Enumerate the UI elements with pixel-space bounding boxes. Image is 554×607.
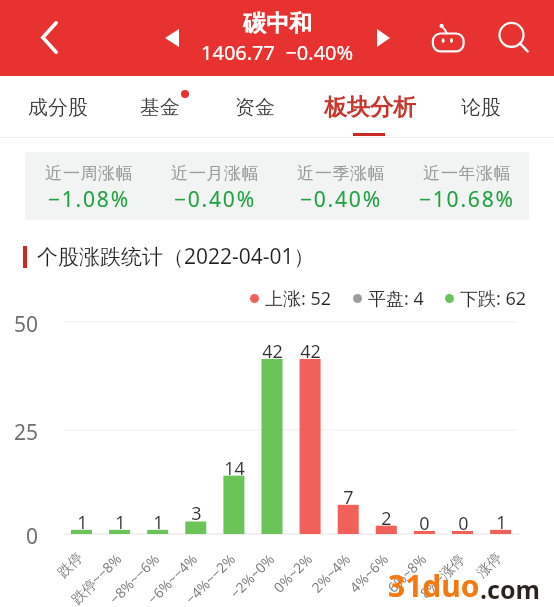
button[interactable]: Assistant bbox=[425, 14, 473, 62]
staticText: −4%~−2% bbox=[181, 549, 240, 607]
staticText: 近一月涨幅 bbox=[171, 163, 259, 184]
staticText: −2%~0% bbox=[225, 549, 278, 602]
staticText: 2%~4% bbox=[307, 549, 355, 596]
button[interactable]: 论股 bbox=[429, 77, 533, 137]
staticText: 个股涨跌统计（2022-04-01） bbox=[37, 242, 315, 271]
staticText: .com bbox=[480, 572, 540, 606]
staticText: 6%~8% bbox=[383, 549, 431, 596]
staticText: 0 bbox=[458, 511, 469, 536]
staticText: 1 bbox=[115, 510, 126, 535]
button[interactable]: 近一周涨幅 bbox=[25, 152, 529, 220]
staticText: −1.08% bbox=[48, 185, 130, 214]
staticText: 0%~2% bbox=[269, 549, 317, 596]
staticText: −0.40% bbox=[174, 185, 256, 214]
staticText: 涨停 bbox=[473, 549, 506, 582]
staticText: 1 bbox=[153, 510, 164, 535]
staticText: 0 bbox=[26, 522, 39, 551]
staticText: −6%~−4% bbox=[143, 549, 202, 607]
staticText: 2 bbox=[381, 506, 392, 531]
staticText: 基金 bbox=[140, 95, 180, 120]
button[interactable]: 资金 bbox=[203, 77, 307, 137]
staticText: 0 bbox=[419, 511, 430, 536]
staticText: 3 bbox=[191, 501, 202, 526]
staticText: 平盘: 4 bbox=[368, 286, 424, 311]
button[interactable]: Search bbox=[490, 14, 538, 62]
staticText: 上涨: 52 bbox=[265, 286, 332, 311]
staticText: 50 bbox=[14, 310, 39, 339]
staticText: 跌停~−8% bbox=[67, 549, 126, 607]
staticText: 碳中和 bbox=[243, 9, 312, 38]
button[interactable]: Back bbox=[25, 13, 73, 61]
staticText: 板块分析 bbox=[324, 93, 416, 122]
button[interactable]: Previous sector bbox=[153, 19, 190, 56]
staticText: 42 bbox=[262, 339, 283, 364]
button[interactable]: 基金 bbox=[108, 77, 212, 137]
button[interactable]: 板块分析 bbox=[318, 77, 422, 137]
staticText: 14 bbox=[224, 456, 245, 481]
staticText: 跌停 bbox=[54, 549, 87, 582]
staticText: −8%~−6% bbox=[105, 549, 164, 607]
button[interactable]: 成分股 bbox=[6, 77, 110, 137]
button[interactable]: Next sector bbox=[365, 19, 402, 56]
staticText: 近一季涨幅 bbox=[297, 163, 385, 184]
staticText: 近一年涨幅 bbox=[423, 163, 511, 184]
staticText: 31duo bbox=[388, 565, 480, 606]
staticText: 25 bbox=[14, 418, 39, 447]
staticText: 下跌: 62 bbox=[460, 286, 527, 311]
staticText: 4%~6% bbox=[345, 549, 393, 596]
staticText: 7 bbox=[343, 485, 354, 510]
staticText: 近一周涨幅 bbox=[45, 163, 133, 184]
staticText: −0.40% bbox=[300, 185, 382, 214]
staticText: 1 bbox=[77, 510, 88, 535]
staticText: 成分股 bbox=[28, 95, 88, 120]
staticText: 1406.77 −0.40% bbox=[201, 39, 354, 66]
staticText: 资金 bbox=[235, 95, 275, 120]
staticText: 论股 bbox=[461, 95, 501, 120]
staticText: −10.68% bbox=[419, 185, 515, 214]
staticText: 1 bbox=[496, 510, 507, 535]
staticText: 8%~涨停 bbox=[415, 549, 468, 602]
staticText: 42 bbox=[300, 339, 321, 364]
